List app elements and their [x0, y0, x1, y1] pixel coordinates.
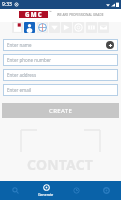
- staticText: GMC: [25, 11, 43, 18]
- button[interactable]: Settings: [91, 181, 121, 200]
- button[interactable]: Card: [86, 22, 97, 33]
- staticText: Generate: [38, 192, 54, 197]
- staticText: 9:33: [2, 1, 12, 8]
- button[interactable]: Search: [0, 181, 31, 200]
- staticText: Enter name: [7, 42, 32, 48]
- other: Settings notification: [14, 2, 19, 7]
- button[interactable]: Enter address: [3, 69, 118, 81]
- staticText: Enter email: [7, 87, 32, 93]
- button[interactable]: Generate: [31, 181, 61, 200]
- button[interactable]: Web: [37, 22, 48, 33]
- staticText: CONTACT: [27, 155, 94, 174]
- button[interactable]: Media: [61, 22, 72, 33]
- button[interactable]: Email: [73, 22, 84, 33]
- staticText: Enter phone number: [7, 57, 52, 63]
- staticText: WE ARE PROFESSIONAL GRADE: [57, 13, 104, 17]
- button[interactable]: Enter phone number: [3, 54, 118, 66]
- button[interactable]: Enter email: [3, 84, 118, 96]
- staticText: CREATE: [49, 107, 73, 115]
- button[interactable]: Contact: [24, 22, 35, 33]
- staticText: ™: [49, 10, 52, 14]
- button[interactable]: Document: [12, 22, 23, 33]
- button[interactable]: History: [61, 181, 91, 200]
- button[interactable]: Message: [98, 22, 109, 33]
- button[interactable]: Add contact: [106, 41, 114, 49]
- staticText: Enter address: [7, 72, 37, 78]
- button[interactable]: Mail: [49, 22, 60, 33]
- button[interactable]: Enter name: [3, 39, 118, 51]
- button[interactable]: CREATE: [2, 103, 119, 118]
